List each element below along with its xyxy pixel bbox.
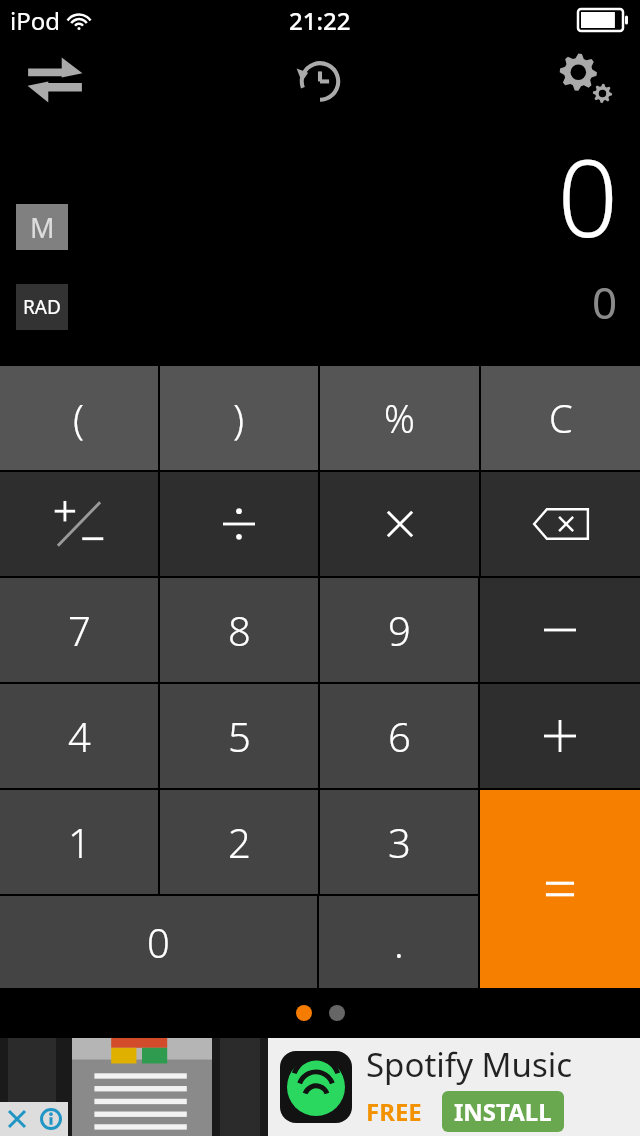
staticText: ( <box>73 391 85 445</box>
staticText: FREE <box>366 1095 422 1128</box>
button[interactable]: 1 <box>0 790 158 894</box>
staticText: 1 <box>68 815 91 869</box>
staticText: 2 <box>228 815 251 869</box>
button[interactable]: Plus minus <box>0 472 158 576</box>
staticText: M <box>30 209 55 246</box>
button[interactable]: Spotify <box>280 1051 352 1123</box>
button[interactable]: 7 <box>0 578 158 682</box>
staticText: 9 <box>388 603 411 657</box>
staticText: 21:22 <box>289 4 351 37</box>
staticText: 7 <box>68 603 91 657</box>
staticText: INSTALL <box>454 1095 552 1128</box>
button[interactable]: Divide <box>160 472 318 576</box>
button[interactable]: Minus <box>480 578 640 682</box>
staticText: 3 <box>388 815 411 869</box>
staticText: % <box>384 392 415 444</box>
button[interactable]: 2 <box>160 790 318 894</box>
button[interactable]: Backspace <box>481 472 640 576</box>
button[interactable]: 8 <box>160 578 318 682</box>
staticText: 0 <box>147 915 170 969</box>
staticText: ) <box>233 391 245 445</box>
button[interactable]: INSTALL <box>442 1091 564 1132</box>
staticText: Spotify Music <box>366 1042 573 1087</box>
staticText: iPod <box>10 4 60 37</box>
staticText: RAD <box>23 294 61 320</box>
button[interactable]: ) <box>160 366 318 470</box>
button[interactable]: Plus <box>480 684 640 788</box>
staticText: 6 <box>388 709 411 763</box>
button[interactable]: Close ad <box>0 1102 34 1136</box>
staticText: C <box>549 392 573 444</box>
button[interactable]: % <box>320 366 479 470</box>
button[interactable]: Equals <box>480 790 640 988</box>
button[interactable]: 3 <box>320 790 478 894</box>
button[interactable]: . <box>319 896 478 988</box>
button[interactable]: C <box>481 366 640 470</box>
staticText: 5 <box>228 709 251 763</box>
button[interactable]: 6 <box>320 684 478 788</box>
staticText: 4 <box>68 709 91 763</box>
button[interactable]: Settings <box>544 45 630 115</box>
button[interactable]: Multiply <box>320 472 479 576</box>
button[interactable]: History <box>277 45 363 115</box>
staticText: 0 <box>592 272 618 332</box>
staticText: . <box>394 915 404 969</box>
staticText: 0 <box>557 124 618 268</box>
button[interactable]: 4 <box>0 684 158 788</box>
button[interactable]: 9 <box>320 578 478 682</box>
button[interactable]: RAD <box>16 284 68 330</box>
button[interactable]: Ad info <box>34 1102 68 1136</box>
button[interactable]: Swap <box>12 45 98 115</box>
button[interactable]: 0 <box>0 896 317 988</box>
button[interactable]: ( <box>0 366 158 470</box>
staticText: 8 <box>228 603 251 657</box>
button[interactable]: 5 <box>160 684 318 788</box>
button[interactable]: M <box>16 204 68 250</box>
